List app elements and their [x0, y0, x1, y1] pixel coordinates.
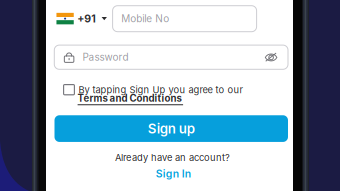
button[interactable]: Password — [54, 45, 288, 69]
staticText: Already have an account? — [115, 152, 230, 163]
button[interactable]: Mobile No — [113, 6, 257, 32]
staticText: By tapping Sign Up you agree to our — [78, 84, 243, 96]
staticText: Mobile No — [121, 13, 169, 25]
button[interactable]: Sign up — [54, 115, 288, 142]
staticText: Terms and Conditions — [78, 92, 182, 104]
staticText: Sign up — [148, 120, 195, 137]
staticText: Password — [83, 51, 129, 63]
button[interactable]: Terms and Conditions — [78, 92, 183, 105]
staticText: Sign In — [156, 167, 191, 180]
staticText: +91 — [77, 12, 96, 25]
button[interactable]: Sign In — [153, 164, 194, 183]
button[interactable]: Accept terms and conditions — [62, 83, 76, 97]
button[interactable]: Select country code, currently +91 — [56, 9, 107, 29]
